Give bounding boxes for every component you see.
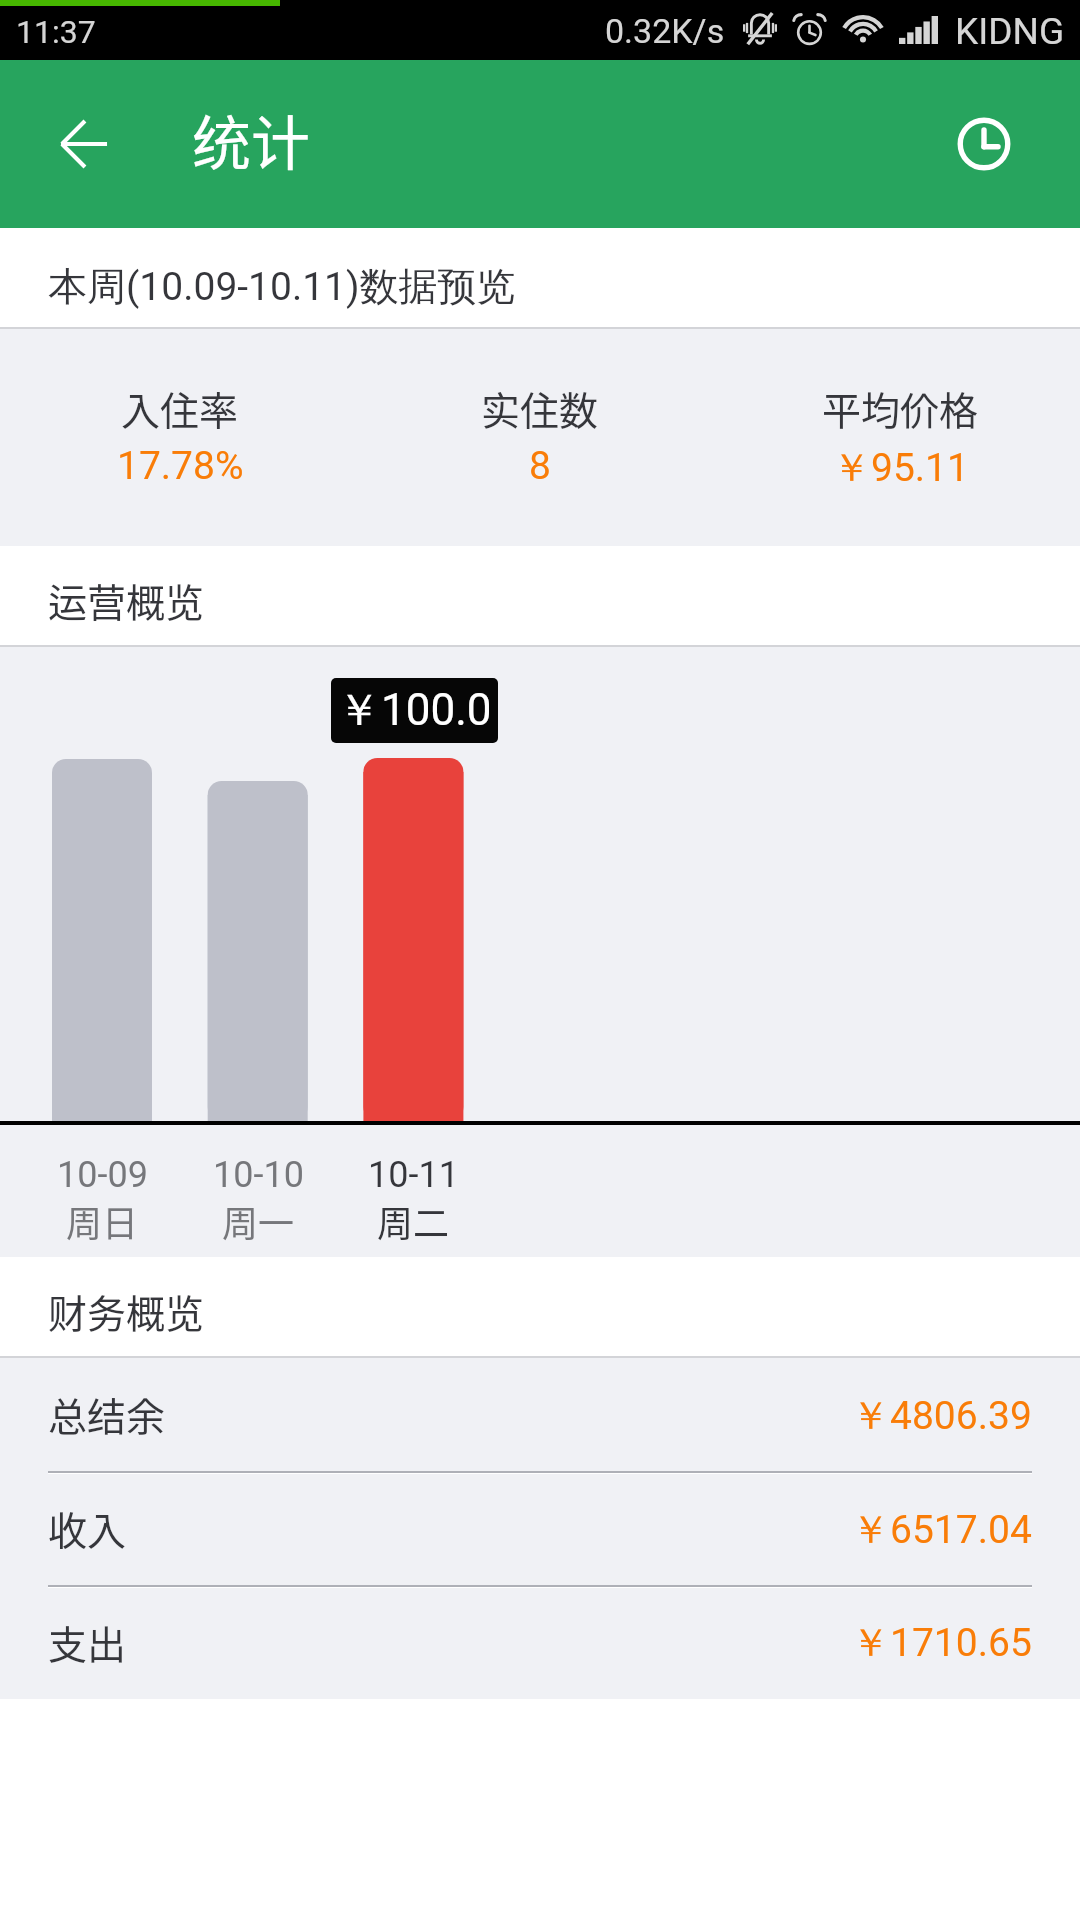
staticText: 总结余 — [48, 1386, 166, 1442]
staticText: 收入 — [48, 1500, 127, 1556]
staticText: 入住率 — [121, 380, 239, 436]
button[interactable]: 总结余 — [0, 1358, 1080, 1472]
staticText: 统计 — [192, 97, 311, 182]
staticText: 0.32K/s — [605, 11, 725, 51]
button[interactable]: 入住率 — [0, 329, 360, 546]
staticText: ￥1710.65 — [851, 1618, 1032, 1667]
staticText: 本周(10.09-10.11)数据预览 — [48, 262, 516, 311]
staticText: ￥100.0 — [337, 683, 492, 738]
staticText: 11:37 — [16, 13, 96, 51]
button[interactable]: 平均价格 — [720, 329, 1080, 546]
staticText: ￥4806.39 — [851, 1391, 1032, 1440]
staticText: 实住数 — [481, 380, 599, 436]
staticText: 10-11 — [368, 1154, 459, 1196]
staticText: 8 — [529, 443, 551, 489]
other: Wi-Fi — [843, 14, 883, 43]
button[interactable]: 支出 — [0, 1586, 1080, 1699]
button[interactable]: 实住数 — [360, 329, 720, 546]
staticText: 周一 — [222, 1195, 295, 1247]
button[interactable]: Back — [34, 94, 134, 194]
other: Alarm — [793, 14, 826, 45]
staticText: ￥95.11 — [832, 443, 969, 492]
other: Silent mode — [742, 12, 778, 46]
staticText: 周日 — [66, 1195, 139, 1247]
staticText: ￥6517.04 — [851, 1505, 1032, 1554]
other: Mobile signal — [899, 16, 938, 44]
staticText: 10-09 — [57, 1154, 148, 1196]
button[interactable]: 收入 — [0, 1472, 1080, 1586]
button[interactable]: History — [934, 94, 1034, 194]
staticText: 财务概览 — [48, 1283, 205, 1339]
staticText: 平均价格 — [822, 380, 979, 436]
staticText: 支出 — [48, 1614, 127, 1670]
staticText: KIDNG — [955, 10, 1065, 53]
staticText: 17.78% — [117, 443, 244, 489]
staticText: 10-10 — [213, 1154, 304, 1196]
staticText: 运营概览 — [48, 572, 205, 628]
staticText: 周二 — [377, 1195, 450, 1247]
